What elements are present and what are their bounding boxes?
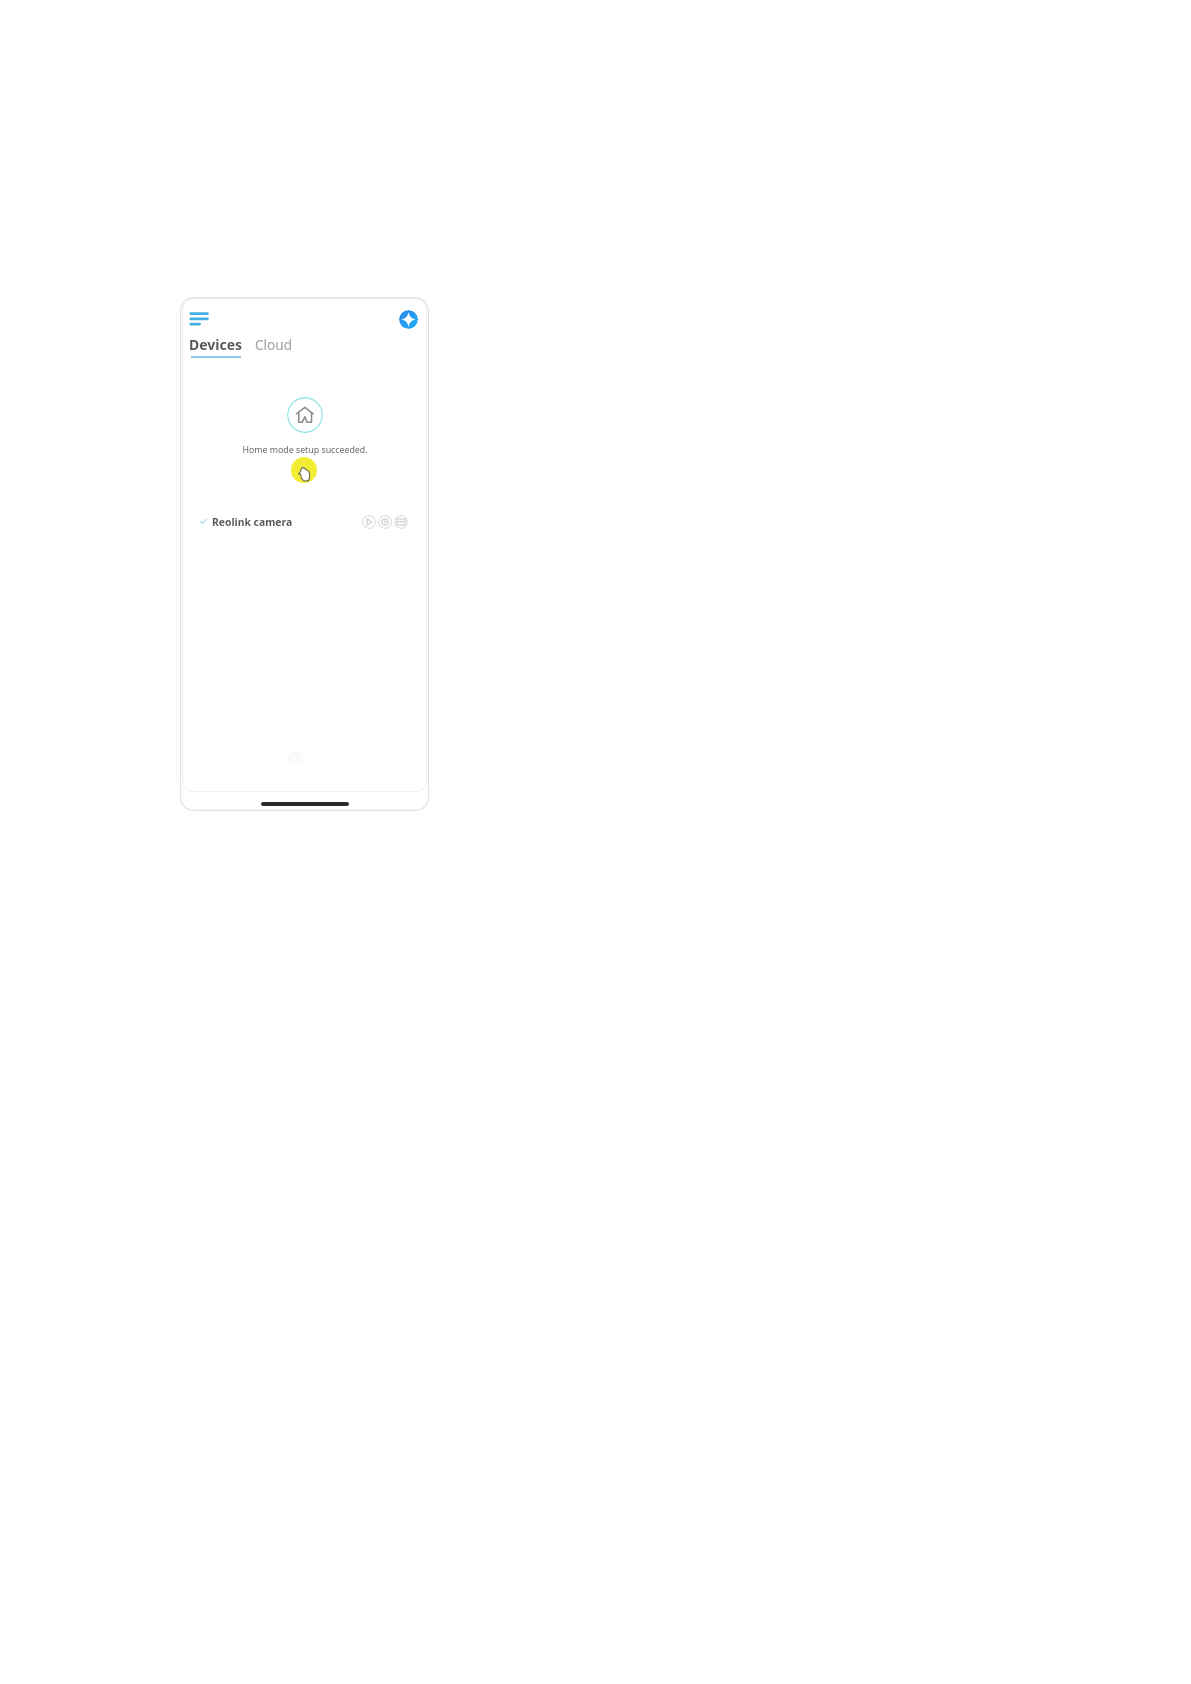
button[interactable]: Add device	[399, 310, 418, 329]
button[interactable]: Play	[362, 515, 376, 529]
button[interactable]: Devices	[189, 335, 243, 358]
staticText: Devices	[189, 335, 243, 354]
staticText: Cloud	[255, 335, 293, 354]
staticText: Home mode setup succeeded.	[242, 444, 368, 456]
button[interactable]: Cloud	[255, 335, 293, 354]
button[interactable]: Timeline	[378, 515, 392, 529]
button[interactable]: Menu	[186, 306, 212, 330]
button[interactable]: Snapshot	[394, 515, 408, 529]
button[interactable]: Home mode	[287, 397, 323, 433]
staticText: Reolink camera	[212, 515, 293, 529]
button[interactable]: Reolink camera	[180, 507, 429, 536]
